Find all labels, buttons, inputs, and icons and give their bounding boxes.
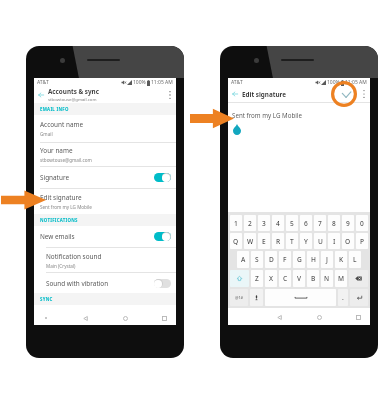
button[interactable]: Edit signature (34, 189, 176, 214)
button[interactable]: Z (251, 270, 263, 287)
staticText: Q (233, 237, 239, 246)
staticText: Accounts & sync (48, 87, 99, 96)
button[interactable]: W (244, 233, 256, 249)
button[interactable]: N (321, 270, 333, 287)
staticText: B (311, 274, 316, 283)
button[interactable]: U (314, 233, 326, 249)
button[interactable]: Y (300, 233, 312, 249)
staticText: Notification sound (46, 252, 102, 261)
staticText: F (283, 255, 287, 264)
button[interactable]: New emails (34, 226, 176, 247)
button[interactable] (349, 270, 368, 287)
button[interactable]: L (349, 251, 361, 268)
staticText: L (353, 255, 357, 264)
button[interactable]: Home (119, 312, 131, 324)
button[interactable]: J (321, 251, 333, 268)
staticText: 4 (276, 219, 280, 228)
staticText: Account name (40, 120, 84, 129)
button[interactable]: T (286, 233, 298, 249)
button[interactable]: 5 (286, 215, 298, 231)
staticText: Your name (40, 146, 73, 155)
button[interactable]: 6 (300, 215, 312, 231)
staticText: P (360, 237, 365, 246)
staticText: Edit signature (40, 193, 82, 202)
button[interactable]: D (265, 251, 277, 268)
staticText: Sent from my LG Mobile (40, 204, 92, 210)
staticText: 8 (332, 219, 336, 228)
staticText: H (311, 255, 316, 264)
staticText: Sound with vibration (46, 279, 109, 288)
button[interactable] (350, 289, 368, 306)
button[interactable]: Account name (34, 115, 176, 142)
button[interactable]: 9 (342, 215, 354, 231)
button[interactable] (230, 270, 249, 287)
staticText: AT&T (231, 79, 243, 86)
button[interactable]: Navigate up (228, 86, 242, 102)
staticText: J (326, 255, 328, 264)
button[interactable]: R (272, 233, 284, 249)
button[interactable]: Recent apps (158, 312, 170, 324)
button[interactable]: O (342, 233, 354, 249)
staticText: 100% (327, 79, 340, 86)
staticText: 11:05 AM (151, 79, 173, 86)
button[interactable]: Sound with vibration (34, 273, 176, 293)
button[interactable]: Back (79, 312, 91, 324)
button[interactable]: Menu (40, 312, 52, 324)
staticText: Gmail (40, 131, 53, 137)
button[interactable]: Navigate up (34, 86, 48, 103)
button[interactable] (250, 289, 263, 306)
staticText: M (338, 274, 345, 283)
staticText: G (297, 255, 302, 264)
button[interactable]: Notification sound (34, 248, 176, 272)
staticText: C (283, 274, 288, 283)
button[interactable]: F (279, 251, 291, 268)
button[interactable]: @1# (230, 289, 248, 306)
staticText: SYNC (40, 296, 53, 302)
button[interactable]: I (328, 233, 340, 249)
button[interactable]: H (307, 251, 319, 268)
button[interactable]: Your name (34, 143, 176, 166)
button[interactable]: 1 (230, 215, 242, 231)
button[interactable]: Q (230, 233, 242, 249)
button[interactable]: K (335, 251, 347, 268)
button[interactable]: 0 (356, 215, 368, 231)
button[interactable]: M (335, 270, 347, 287)
staticText: Z (255, 274, 259, 283)
button[interactable]: Signature (34, 167, 176, 188)
button[interactable]: . (338, 289, 348, 306)
button[interactable]: Recent apps (352, 311, 364, 323)
button[interactable]: 8 (328, 215, 340, 231)
staticText: Edit signature (242, 90, 286, 99)
button[interactable]: X (265, 270, 277, 287)
button[interactable]: 2 (244, 215, 256, 231)
button[interactable]: More options (164, 86, 176, 103)
button[interactable]: B (307, 270, 319, 287)
staticText: 11:05 AM (345, 79, 367, 86)
staticText: Signature (40, 173, 69, 182)
staticText: R (276, 237, 281, 246)
button[interactable]: Save (334, 86, 358, 102)
staticText: 7 (318, 219, 322, 228)
staticText: N (324, 274, 330, 283)
staticText: New emails (40, 232, 75, 241)
staticText: 3 (262, 219, 266, 228)
button[interactable]: 3 (258, 215, 270, 231)
button[interactable] (265, 289, 336, 306)
button[interactable]: V (293, 270, 305, 287)
button[interactable]: C (279, 270, 291, 287)
staticText: @1# (235, 295, 244, 300)
button[interactable]: 4 (272, 215, 284, 231)
button[interactable]: Back (273, 311, 285, 323)
staticText: W (247, 237, 254, 246)
button[interactable]: E (258, 233, 270, 249)
button[interactable]: A (237, 251, 249, 268)
button[interactable]: P (356, 233, 368, 249)
button[interactable]: S (251, 251, 263, 268)
staticText: Sent from my LG Mobile (232, 111, 302, 119)
button[interactable]: 7 (314, 215, 326, 231)
button[interactable]: G (293, 251, 305, 268)
staticText: U (318, 237, 323, 246)
button[interactable]: Home (313, 311, 325, 323)
staticText: NOTIFICATIONS (40, 217, 78, 223)
staticText: E (262, 237, 266, 246)
